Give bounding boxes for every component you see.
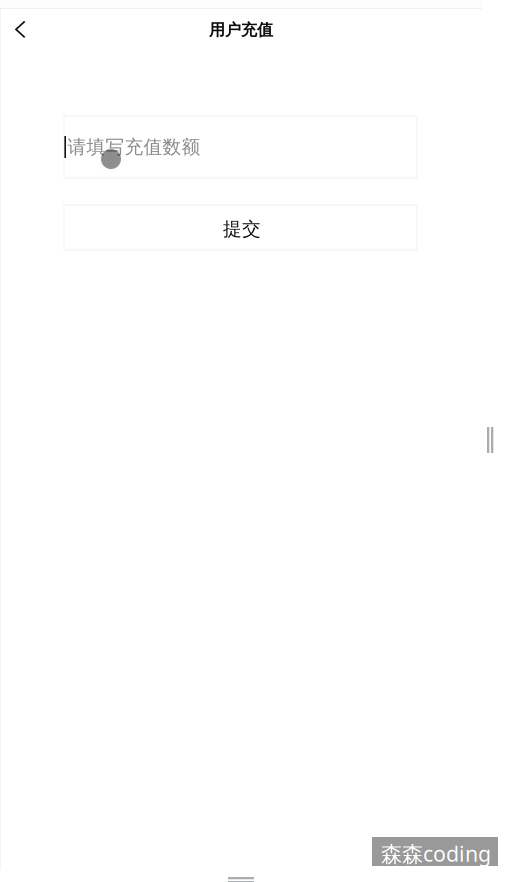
staticText: 用户充值 (209, 20, 273, 40)
button[interactable]: Back (0, 6, 44, 52)
staticText: 提交 (223, 217, 261, 240)
button[interactable]: 请填写充值数额 (64, 116, 417, 178)
staticText: 森森coding (381, 839, 491, 868)
staticText: 请填写充值数额 (67, 135, 200, 158)
button[interactable]: 提交 (64, 205, 417, 250)
